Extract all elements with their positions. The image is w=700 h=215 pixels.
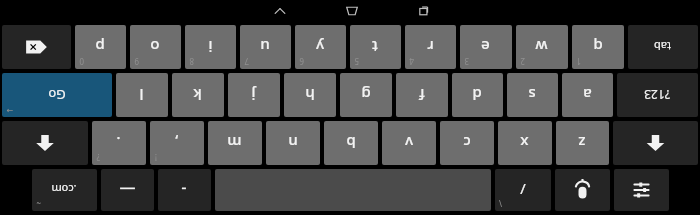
button[interactable]: d	[452, 73, 503, 117]
staticText: u	[260, 37, 270, 57]
button[interactable]: tab	[628, 25, 698, 69]
staticText: c	[463, 133, 471, 153]
button[interactable]: !	[150, 121, 204, 165]
staticText: ?123	[644, 87, 670, 103]
button[interactable]: Home	[330, 0, 374, 22]
staticText: w	[535, 37, 548, 57]
button[interactable]: ~	[32, 169, 97, 211]
staticText: a	[583, 85, 592, 105]
button[interactable]: Voice input	[555, 169, 610, 211]
staticText: p	[95, 37, 105, 57]
staticText: q	[593, 37, 603, 57]
staticText: v	[405, 133, 413, 153]
button[interactable]: m	[208, 121, 262, 165]
button[interactable]: —	[101, 169, 154, 211]
button[interactable]: →	[2, 73, 112, 117]
button[interactable]: c	[440, 121, 494, 165]
staticText: x	[520, 133, 529, 153]
button[interactable]: z	[556, 121, 609, 165]
staticText: !	[154, 152, 157, 163]
staticText: l	[139, 85, 144, 105]
button[interactable]: Shift	[2, 121, 88, 165]
staticText: k	[193, 85, 202, 105]
staticText: 4	[409, 56, 414, 67]
button[interactable]: g	[340, 73, 392, 117]
button[interactable]: a	[562, 73, 613, 117]
button[interactable]: v	[382, 121, 436, 165]
staticText: 8	[189, 56, 194, 67]
button[interactable]: b	[324, 121, 378, 165]
button[interactable]: s	[507, 73, 558, 117]
button[interactable]: Input settings	[614, 169, 669, 211]
staticText: d	[472, 85, 482, 105]
button[interactable]: x	[498, 121, 552, 165]
staticText: 0	[79, 56, 84, 67]
button[interactable]: 0	[75, 25, 126, 69]
staticText: y	[316, 37, 324, 57]
button[interactable]: 4	[405, 25, 456, 69]
button[interactable]: Back	[258, 0, 302, 22]
staticText: 5	[354, 56, 359, 67]
button[interactable]: f	[396, 73, 448, 117]
button[interactable]: h	[284, 73, 336, 117]
staticText: f	[419, 85, 425, 105]
staticText: \	[499, 198, 502, 209]
staticText: -	[181, 179, 187, 201]
staticText: i	[208, 37, 213, 57]
button[interactable]: n	[266, 121, 320, 165]
staticText: m	[227, 133, 242, 153]
staticText: o	[150, 37, 160, 57]
staticText: —	[119, 179, 136, 201]
button[interactable]: k	[172, 73, 224, 117]
staticText: b	[346, 133, 356, 153]
staticText: h	[305, 85, 315, 105]
button[interactable]: j	[228, 73, 280, 117]
staticText: e	[481, 37, 490, 57]
staticText: ?	[96, 152, 100, 163]
button[interactable]: 5	[350, 25, 401, 69]
staticText: ,	[174, 133, 179, 153]
button[interactable]: 3	[460, 25, 512, 69]
staticText: /	[520, 180, 526, 200]
staticText: 2	[520, 56, 525, 67]
staticText: ~	[36, 198, 41, 209]
staticText: Go	[48, 86, 66, 104]
staticText: n	[288, 133, 298, 153]
staticText: z	[578, 133, 586, 153]
staticText: s	[528, 85, 536, 105]
button[interactable]: 6	[295, 25, 346, 69]
button[interactable]: ?	[92, 121, 146, 165]
staticText: g	[361, 85, 371, 105]
button[interactable]: 8	[185, 25, 236, 69]
button[interactable]: Recents	[402, 0, 446, 22]
staticText: 1	[576, 56, 581, 67]
staticText: .	[116, 133, 121, 153]
staticText: .com	[51, 182, 77, 197]
staticText: j	[251, 85, 256, 105]
button[interactable]: \	[495, 169, 551, 211]
button[interactable]: ?123	[617, 73, 698, 117]
staticText: →	[6, 106, 13, 115]
button[interactable]: l	[116, 73, 168, 117]
staticText: 9	[134, 56, 139, 67]
button[interactable]: 1	[572, 25, 624, 69]
button[interactable]: -	[158, 169, 211, 211]
button[interactable]: Backspace	[2, 25, 71, 69]
staticText: 6	[299, 56, 304, 67]
staticText: 3	[464, 56, 469, 67]
button[interactable]: 7	[240, 25, 291, 69]
staticText: 7	[244, 56, 249, 67]
button[interactable]: 9	[130, 25, 181, 69]
staticText: t	[372, 37, 378, 57]
staticText: tab	[654, 39, 671, 54]
button[interactable]: 2	[516, 25, 568, 69]
button[interactable]: Shift	[613, 121, 698, 165]
staticText: r	[427, 37, 434, 57]
